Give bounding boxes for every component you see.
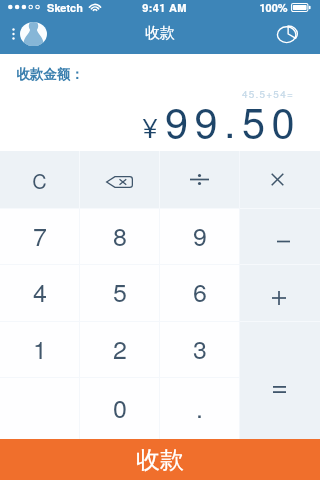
staticText: 收款 — [136, 445, 184, 475]
staticText: 3 — [193, 330, 207, 366]
staticText: 7 — [33, 217, 47, 253]
staticText: 99.50 — [165, 90, 301, 149]
button[interactable]: C — [0, 151, 79, 208]
other: Plus — [272, 291, 286, 305]
other: Equals — [273, 386, 286, 393]
staticText: ¥ — [142, 107, 158, 146]
staticText: 9 — [193, 217, 207, 253]
other: Backspace — [106, 176, 133, 188]
staticText: 45.5+54= — [242, 87, 294, 101]
button[interactable]: 8 — [80, 209, 159, 264]
staticText: 2 — [113, 330, 127, 366]
button[interactable]: Divide — [160, 151, 239, 208]
button[interactable]: 3 — [160, 322, 239, 377]
button[interactable]: 2 — [80, 322, 159, 377]
staticText: 4 — [33, 273, 47, 309]
other: Minus — [277, 240, 290, 243]
button[interactable]: 7 — [0, 209, 79, 264]
staticText: 100% — [259, 0, 288, 14]
other: Divide — [190, 174, 209, 185]
button[interactable]: Minus — [240, 209, 320, 264]
button[interactable]: Plus — [240, 265, 320, 321]
staticText: Sketch — [47, 0, 83, 14]
staticText: 收款 — [145, 24, 175, 43]
button[interactable]: Account — [6, 18, 53, 50]
staticText: 收款金额： — [16, 66, 84, 83]
button[interactable]: Multiply — [240, 151, 320, 208]
staticText: 6 — [193, 273, 207, 309]
staticText: . — [196, 389, 203, 425]
button[interactable]: 收款 — [0, 439, 320, 480]
button[interactable]: . — [160, 378, 239, 439]
staticText: 8 — [113, 217, 127, 253]
button[interactable]: Statistics — [269, 17, 306, 51]
staticText: C — [32, 166, 47, 195]
button[interactable]: 9 — [160, 209, 239, 264]
staticText: 0 — [113, 389, 127, 425]
button[interactable]: 1 — [0, 322, 79, 377]
staticText: 9:41 AM — [142, 0, 187, 14]
staticText: 1 — [33, 330, 47, 366]
button[interactable]: Equals — [240, 322, 320, 439]
button[interactable]: 5 — [80, 265, 159, 321]
other: Multiply — [271, 173, 284, 186]
button[interactable]: 4 — [0, 265, 79, 321]
staticText: 5 — [113, 273, 127, 309]
button[interactable]: 6 — [160, 265, 239, 321]
button[interactable]: 0 — [80, 378, 159, 439]
button[interactable]: Backspace — [80, 151, 159, 208]
